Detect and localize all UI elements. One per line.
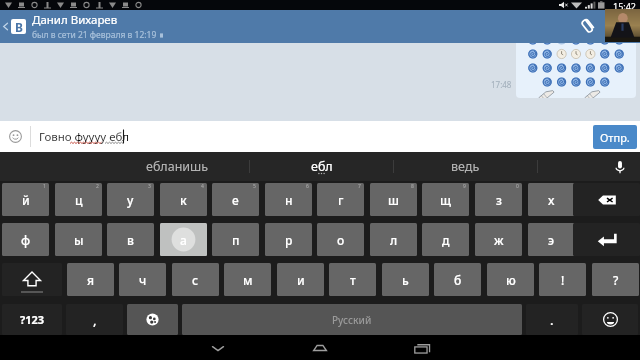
staticText: м [243, 272, 253, 288]
staticText: ч [139, 272, 147, 288]
staticText: с [192, 272, 199, 288]
button[interactable]: ? [592, 263, 639, 296]
staticText: . [550, 311, 554, 329]
button[interactable]: Отпр. [593, 125, 637, 149]
button[interactable]: к [160, 183, 207, 216]
button[interactable]: р [265, 223, 312, 256]
staticText: ебланишь [146, 158, 209, 175]
button[interactable]: д [422, 223, 469, 256]
staticText: у [127, 192, 134, 208]
button[interactable]: ебл [250, 152, 393, 181]
button[interactable]: , [66, 304, 123, 335]
staticText: 1 [43, 183, 46, 190]
staticText: 5 [253, 183, 256, 190]
button[interactable]: й [2, 183, 49, 216]
staticText: 8 [411, 183, 414, 190]
button[interactable]: е [212, 183, 259, 216]
button[interactable]: Русский [182, 304, 522, 335]
staticText: ш [388, 192, 399, 208]
button[interactable]: Back [194, 335, 242, 360]
staticText: щ [440, 192, 451, 208]
button[interactable]: Video call [605, 9, 640, 42]
staticText: а [180, 232, 187, 248]
staticText: Говно фуууу ебл [39, 129, 130, 145]
button[interactable]: ж [475, 223, 522, 256]
button[interactable]: щ [422, 183, 469, 216]
staticText: б [454, 272, 462, 288]
staticText: д [442, 232, 450, 248]
staticText: ф [21, 232, 31, 248]
button[interactable]: Home [296, 335, 344, 360]
staticText: я [87, 272, 95, 288]
staticText: н [285, 192, 293, 208]
button[interactable]: Back [0, 10, 11, 43]
button[interactable]: э [528, 223, 575, 256]
button[interactable]: я [67, 263, 114, 296]
staticText: 7 [358, 183, 361, 190]
staticText: ебл [311, 158, 333, 175]
button[interactable]: Voice input [600, 152, 640, 181]
button[interactable]: B [11, 19, 26, 34]
button[interactable]: п [212, 223, 259, 256]
button[interactable]: ведь [394, 152, 537, 181]
staticText: Данил Вихарев [32, 12, 118, 28]
button[interactable]: о [317, 223, 364, 256]
button[interactable]: х [528, 183, 575, 216]
button[interactable] [516, 30, 636, 98]
button[interactable]: н [265, 183, 312, 216]
button[interactable]: а [160, 223, 207, 256]
button[interactable]: ф [2, 223, 49, 256]
staticText: ь [402, 272, 409, 288]
staticText: 4 [201, 183, 204, 190]
button[interactable]: ы [55, 223, 102, 256]
button[interactable]: ш [370, 183, 417, 216]
button[interactable]: ч [119, 263, 166, 296]
button[interactable]: Enter [573, 223, 640, 256]
staticText: и [297, 272, 305, 288]
staticText: 9 [463, 183, 466, 190]
staticText: ! [561, 272, 565, 288]
button[interactable]: т [329, 263, 376, 296]
button[interactable]: ебланишь [105, 152, 249, 181]
button[interactable]: Recent apps [398, 335, 446, 360]
button[interactable]: б [434, 263, 481, 296]
staticText: з [496, 192, 502, 208]
staticText: о [337, 232, 345, 248]
button[interactable]: м [224, 263, 271, 296]
button[interactable]: . [526, 304, 578, 335]
button[interactable]: Change language [127, 304, 178, 335]
button[interactable]: Attach [570, 10, 604, 43]
button[interactable]: и [277, 263, 324, 296]
button[interactable]: ?123 [2, 304, 62, 335]
button[interactable]: в [107, 223, 154, 256]
staticText: э [548, 232, 555, 248]
staticText: ?123 [20, 312, 45, 327]
button[interactable]: Backspace [573, 183, 640, 216]
button[interactable]: ь [382, 263, 429, 296]
staticText: 17:48 [491, 79, 512, 90]
button[interactable]: с [172, 263, 219, 296]
button[interactable]: у [107, 183, 154, 216]
staticText: ы [74, 232, 84, 248]
button[interactable]: з [475, 183, 522, 216]
staticText: , [93, 311, 97, 329]
button[interactable]: Shift [2, 263, 62, 296]
button[interactable]: Emoji [582, 304, 638, 335]
button[interactable]: Emoji [0, 121, 30, 152]
button[interactable]: ц [55, 183, 102, 216]
button[interactable]: г [317, 183, 364, 216]
button[interactable]: ! [539, 263, 586, 296]
button[interactable]: л [370, 223, 417, 256]
staticText: Отпр. [600, 130, 630, 145]
staticText: ж [494, 232, 504, 248]
staticText: 0 [516, 183, 519, 190]
staticText: ведь [451, 158, 480, 175]
staticText: 2 [96, 183, 99, 190]
button[interactable]: ю [487, 263, 534, 296]
staticText: к [180, 192, 187, 208]
staticText: т [350, 272, 356, 288]
staticText: х [548, 192, 555, 208]
staticText: ю [506, 272, 516, 288]
staticText: в [127, 232, 134, 248]
staticText: г [338, 192, 344, 208]
